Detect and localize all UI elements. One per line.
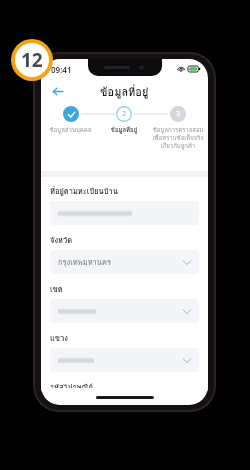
staticText: ข้อมูลที่อยู่ xyxy=(100,83,149,100)
staticText: 2 xyxy=(122,109,127,119)
staticText: ที่อยู่ตามทะเบียนบ้าน xyxy=(50,185,118,197)
button[interactable] xyxy=(50,299,199,323)
staticText: 12 xyxy=(21,47,43,73)
staticText: ข้อมูลการตรวจสอบเพื่อทราบข้อเท็จจริงเกี่… xyxy=(151,125,205,150)
button[interactable] xyxy=(50,201,199,225)
staticText: ข้อมูลที่อยู่ xyxy=(97,125,151,135)
staticText: ข้อมูลส่วนบุคคล xyxy=(44,125,97,135)
staticText: รหัสไปรษณีย์ xyxy=(50,381,93,388)
staticText: กรุงเทพมหานคร xyxy=(58,256,111,268)
staticText: จังหวัด xyxy=(50,234,73,246)
button[interactable]: Back xyxy=(47,81,67,101)
button[interactable]: กรุงเทพมหานคร xyxy=(50,250,199,274)
staticText: 3 xyxy=(176,109,181,119)
button[interactable]: 3 xyxy=(151,106,205,150)
button[interactable]: ข้อมูลส่วนบุคคล xyxy=(44,106,97,135)
staticText: เขต xyxy=(50,283,63,295)
button[interactable] xyxy=(50,348,199,372)
staticText: 09:41 xyxy=(51,64,72,75)
staticText: แขวง xyxy=(50,332,68,344)
button[interactable]: 2 xyxy=(97,106,151,135)
